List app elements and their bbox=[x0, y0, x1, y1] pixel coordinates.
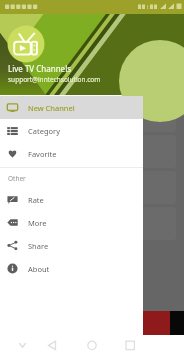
button[interactable]: Category bbox=[0, 119, 143, 142]
staticText: Share bbox=[28, 241, 49, 251]
staticText: support@inntechsolution.com bbox=[8, 75, 101, 84]
button[interactable] bbox=[6, 63, 176, 96]
button[interactable]: Favorite bbox=[0, 142, 143, 165]
staticText: Category bbox=[28, 126, 60, 136]
button[interactable] bbox=[6, 171, 176, 204]
button[interactable] bbox=[6, 135, 176, 168]
staticText: Favorite bbox=[28, 149, 57, 159]
button[interactable]: More bbox=[0, 211, 143, 234]
button[interactable] bbox=[6, 207, 176, 240]
button[interactable]: New Channel bbox=[0, 96, 143, 119]
staticText: Other bbox=[8, 174, 26, 183]
button[interactable]: Share bbox=[0, 234, 143, 257]
staticText: More bbox=[28, 218, 47, 228]
button[interactable]: About bbox=[0, 257, 143, 280]
staticText: Rate bbox=[28, 195, 44, 205]
staticText: CATEGORY bbox=[139, 44, 170, 52]
staticText: About bbox=[28, 264, 50, 274]
button[interactable]: Rate bbox=[0, 188, 143, 211]
button[interactable] bbox=[6, 99, 176, 132]
staticText: Live TV Channels bbox=[8, 63, 72, 74]
staticText: New Channel bbox=[28, 103, 75, 113]
